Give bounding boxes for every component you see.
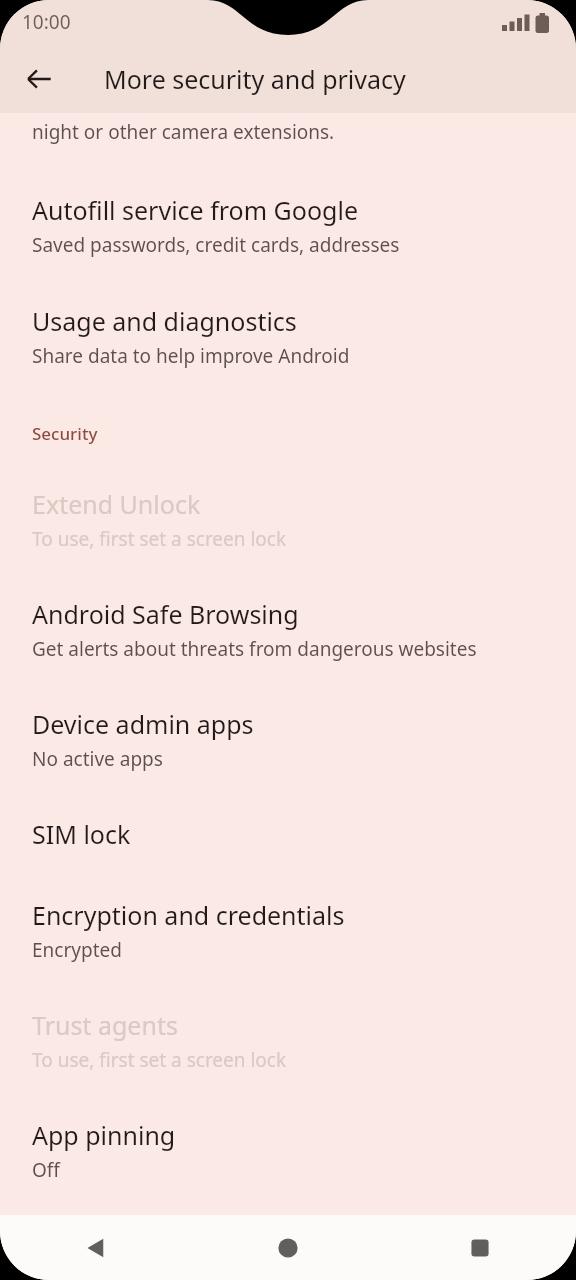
button[interactable]: SIM lock bbox=[0, 817, 576, 851]
staticText: Saved passwords, credit cards, addresses bbox=[32, 232, 400, 258]
button[interactable]: Recent apps bbox=[384, 1215, 576, 1280]
button[interactable]: Autofill service from Google bbox=[0, 193, 576, 258]
staticText: Share data to help improve Android bbox=[32, 343, 350, 369]
staticText: 10:00 bbox=[22, 9, 71, 35]
staticText: No active apps bbox=[32, 746, 163, 772]
staticText: Encryption and credentials bbox=[32, 898, 345, 932]
button[interactable]: Extend Unlock bbox=[0, 487, 576, 552]
staticText: Security bbox=[32, 422, 98, 445]
staticText: To use, first set a screen lock bbox=[32, 1047, 287, 1073]
staticText: App pinning bbox=[32, 1118, 176, 1152]
staticText: Device admin apps bbox=[32, 707, 254, 741]
button[interactable]: Android Safe Browsing bbox=[0, 597, 576, 662]
button[interactable]: Back bbox=[0, 1215, 192, 1280]
button[interactable]: Back bbox=[15, 55, 63, 103]
button[interactable]: App pinning bbox=[0, 1118, 576, 1183]
staticText: To use, first set a screen lock bbox=[32, 526, 287, 552]
staticText: Trust agents bbox=[32, 1008, 178, 1042]
staticText: Autofill service from Google bbox=[32, 193, 358, 227]
button[interactable]: Trust agents bbox=[0, 1008, 576, 1073]
staticText: Encrypted bbox=[32, 937, 122, 963]
staticText: Get alerts about threats from dangerous … bbox=[32, 636, 477, 662]
button[interactable]: Encryption and credentials bbox=[0, 898, 576, 963]
staticText: Extend Unlock bbox=[32, 487, 201, 521]
button[interactable]: night or other camera extensions. bbox=[0, 119, 576, 145]
button[interactable]: Usage and diagnostics bbox=[0, 304, 576, 369]
staticText: SIM lock bbox=[32, 817, 131, 851]
staticText: Off bbox=[32, 1157, 60, 1183]
staticText: Usage and diagnostics bbox=[32, 304, 297, 338]
button[interactable]: Home bbox=[192, 1215, 384, 1280]
staticText: Android Safe Browsing bbox=[32, 597, 299, 631]
staticText: night or other camera extensions. bbox=[32, 119, 335, 145]
button[interactable]: Device admin apps bbox=[0, 707, 576, 772]
staticText: More security and privacy bbox=[104, 62, 406, 96]
